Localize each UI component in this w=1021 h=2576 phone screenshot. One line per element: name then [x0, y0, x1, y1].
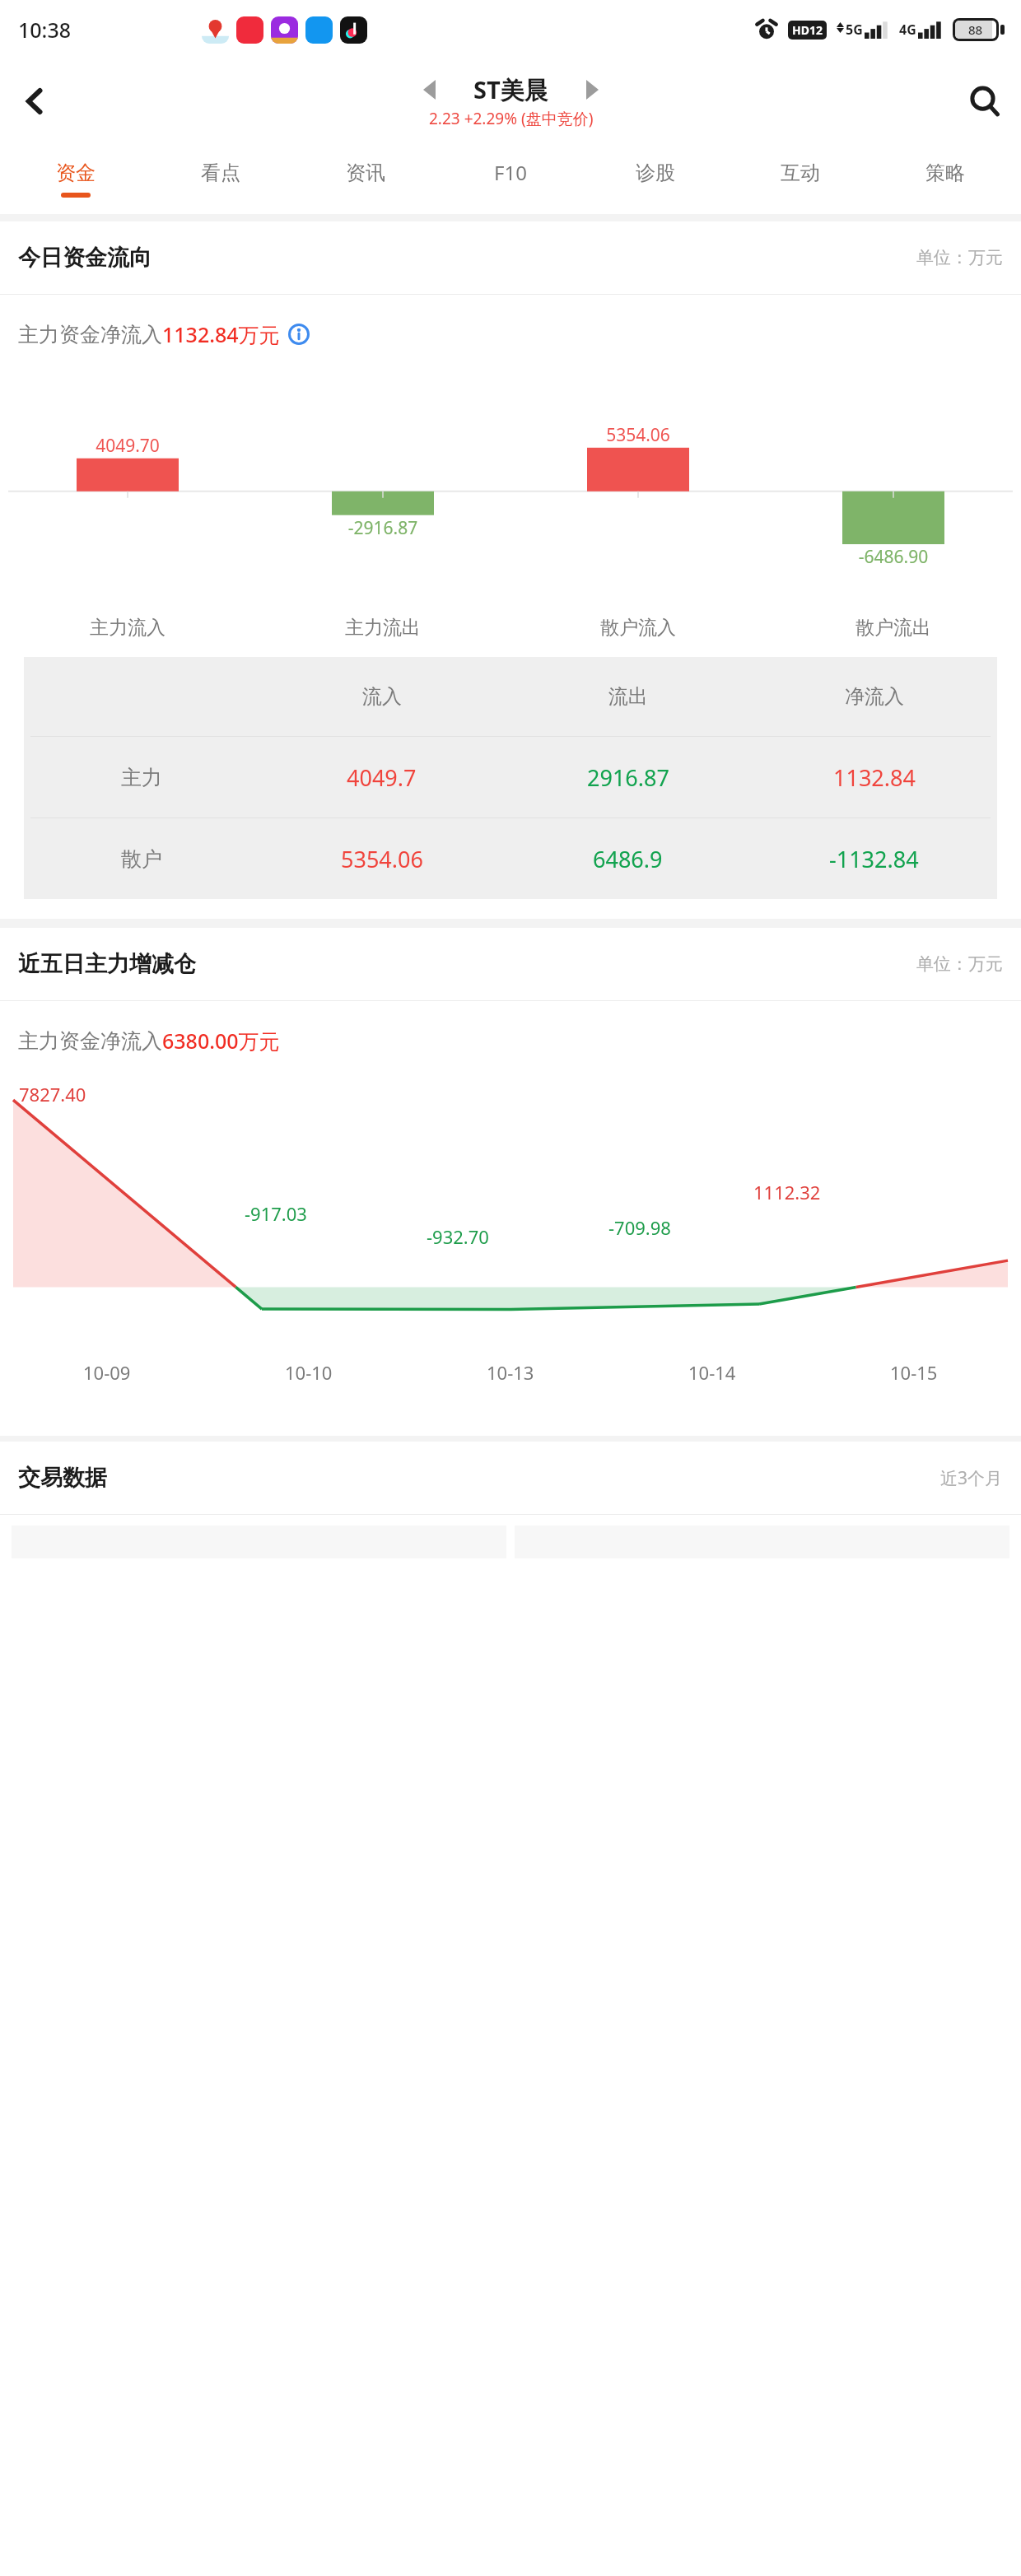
button[interactable]: 返回	[0, 67, 69, 136]
staticText: -709.98	[608, 1215, 671, 1240]
button[interactable]: 上一只	[423, 80, 436, 100]
staticText: 流入	[362, 684, 402, 709]
button[interactable]: F10	[438, 143, 583, 214]
staticText: 资讯	[346, 161, 385, 185]
button[interactable]: 近五日主力增减仓	[0, 928, 1021, 1000]
button[interactable]: 主力	[24, 737, 997, 818]
button[interactable]: 资讯	[293, 143, 438, 214]
staticText: 1112.32	[753, 1180, 821, 1204]
staticText: 流出	[608, 684, 648, 709]
staticText: 88	[968, 21, 983, 38]
staticText: 2916.87	[587, 762, 669, 793]
staticText: 4049.70	[0, 434, 255, 458]
staticText: 近3个月	[940, 1466, 1003, 1490]
staticText: 10:38	[18, 16, 72, 44]
staticText: 10-14	[688, 1360, 736, 1385]
staticText: F10	[494, 159, 527, 186]
staticText: 5354.06	[341, 844, 423, 874]
staticText: 5G	[846, 21, 863, 39]
staticText: 散户	[121, 846, 162, 872]
staticText: 近五日主力增减仓	[18, 950, 196, 978]
staticText: 主力流出	[345, 616, 421, 640]
staticText: 主力资金净流入	[18, 322, 162, 347]
staticText: 散户流入	[600, 616, 676, 640]
staticText: -2916.87	[255, 516, 510, 540]
staticText: -917.03	[245, 1201, 307, 1226]
button[interactable]: 诊股	[583, 143, 728, 214]
staticText: 主力	[121, 765, 162, 790]
staticText: -1132.84	[829, 844, 919, 874]
staticText: 散户流出	[855, 616, 931, 640]
staticText: 1132.84	[833, 762, 916, 793]
staticText: 净流入	[845, 684, 904, 709]
button[interactable]: 交易数据	[0, 1442, 1021, 1514]
staticText: HD12	[792, 22, 823, 38]
button[interactable]: 搜索	[949, 65, 1021, 137]
button[interactable]: 互动	[728, 143, 873, 214]
staticText: 今日资金流向	[18, 244, 152, 272]
staticText: 策略	[925, 161, 965, 185]
staticText: 交易数据	[18, 1464, 107, 1492]
staticText: -6486.90	[766, 545, 1021, 569]
staticText: 主力流入	[90, 616, 166, 640]
staticText: 7827.40	[19, 1082, 86, 1106]
staticText: 4G	[899, 21, 916, 39]
staticText: 4049.7	[347, 762, 417, 793]
staticText: 资金	[56, 161, 96, 185]
staticText: 6486.9	[593, 844, 663, 874]
staticText: -932.70	[427, 1224, 489, 1249]
staticText: 5354.06	[510, 423, 766, 447]
button[interactable]: 散户	[24, 818, 997, 899]
button[interactable]: 策略	[873, 143, 1018, 214]
button[interactable]: 下一只	[586, 80, 599, 100]
staticText: 诊股	[636, 161, 675, 185]
staticText: 主力资金净流入	[18, 1028, 162, 1054]
staticText: 互动	[781, 161, 820, 185]
staticText: 2.23 +2.29% (盘中竞价)	[429, 108, 594, 129]
button[interactable]: 今日资金流向	[0, 221, 1021, 294]
staticText: 单位：万元	[916, 247, 1003, 268]
staticText: 6380.00万元	[162, 1027, 280, 1055]
staticText: 1132.84万元	[162, 320, 280, 348]
staticText: ST美晨	[473, 73, 548, 106]
staticText: 10-09	[83, 1360, 131, 1385]
button[interactable]: 说明	[288, 324, 310, 345]
staticText: 单位：万元	[916, 953, 1003, 975]
staticText: 10-15	[890, 1360, 938, 1385]
staticText: 看点	[201, 161, 240, 185]
button[interactable]: 看点	[148, 143, 293, 214]
button[interactable]: 资金	[3, 143, 148, 214]
staticText: 10-13	[487, 1360, 534, 1385]
staticText: 10-10	[285, 1360, 333, 1385]
